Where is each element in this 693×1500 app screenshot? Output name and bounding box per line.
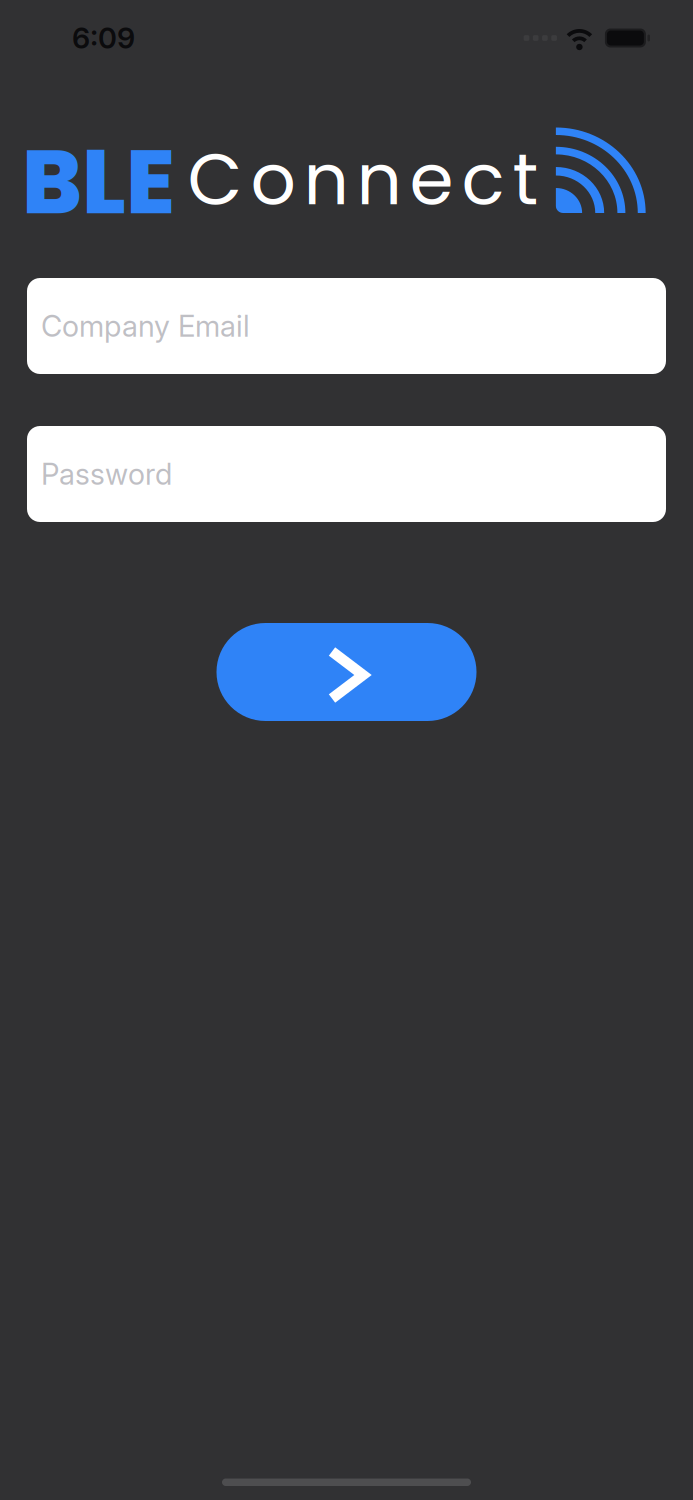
button[interactable]: Company Email [27,278,666,374]
staticText: Connect [187,130,538,229]
button[interactable]: Log In [216,623,476,721]
staticText: BLE [22,119,175,245]
button[interactable]: Password [27,426,666,522]
staticText: 6:09 [72,20,135,56]
staticText: Password [41,456,172,492]
staticText: Company Email [41,308,250,344]
